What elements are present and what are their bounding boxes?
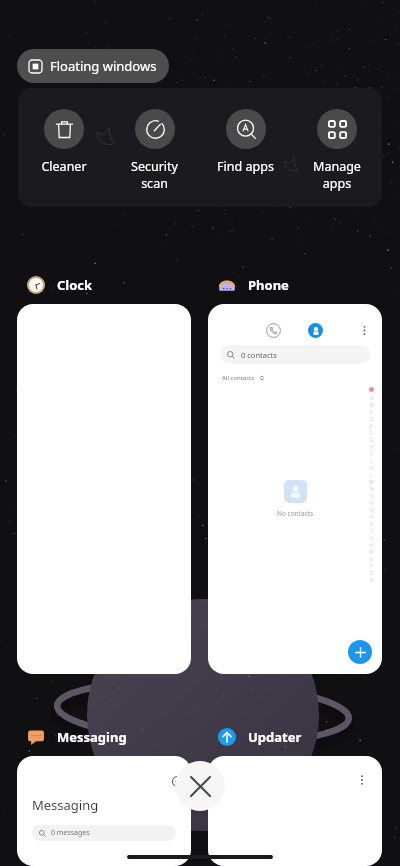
button[interactable]: Manage apps (291, 88, 382, 207)
staticText: N (370, 486, 374, 493)
staticText: X (370, 556, 373, 563)
staticText: Updater (248, 728, 302, 746)
staticText: No contacts (277, 509, 314, 518)
staticText: M (369, 479, 374, 486)
other: More options (358, 324, 371, 337)
button[interactable]: Updater (218, 728, 302, 746)
button[interactable]: Search (17, 756, 191, 866)
staticText: 0 messages (51, 828, 90, 838)
staticText: U (370, 535, 374, 542)
staticText: Y (370, 563, 373, 570)
staticText: R (370, 514, 373, 521)
button[interactable]: Phone (218, 276, 289, 294)
button[interactable]: Find apps (200, 88, 291, 207)
button[interactable]: Dialer (208, 304, 382, 674)
other: Search (172, 776, 183, 787)
other: Security scan (146, 120, 165, 139)
staticText: Floating windows (50, 57, 157, 75)
staticText: Clock (57, 276, 93, 294)
staticText: J (371, 458, 373, 465)
staticText: C (370, 409, 374, 416)
staticText: O (370, 493, 374, 500)
button[interactable] (17, 304, 191, 674)
button[interactable]: Close all (175, 761, 225, 811)
staticText: B (370, 402, 374, 409)
staticText: Messaging (57, 728, 127, 746)
staticText: Security scan (131, 158, 178, 191)
staticText: Z (370, 570, 373, 577)
button[interactable]: Add contact (348, 640, 372, 664)
staticText: Q (370, 507, 374, 514)
button[interactable]: Contacts (308, 323, 323, 338)
button[interactable]: Floating windows (17, 49, 169, 83)
staticText: K (370, 465, 373, 472)
staticText: E (370, 423, 373, 430)
button[interactable]: 0 messages (32, 825, 176, 841)
other: Find apps (237, 120, 256, 139)
staticText: W (369, 549, 374, 556)
staticText: 0 contacts (241, 350, 277, 360)
staticText: Messaging (32, 796, 99, 814)
other: Dialer (266, 323, 281, 338)
staticText: A (370, 395, 374, 402)
other: Cleaner (55, 120, 74, 139)
other: Manage apps (328, 120, 347, 139)
staticText: Phone (248, 276, 289, 294)
staticText: D (370, 416, 374, 423)
button[interactable]: Security scan (109, 88, 200, 207)
staticText: All contacts (222, 374, 255, 382)
button[interactable]: Clock (27, 276, 93, 294)
staticText: T (370, 528, 373, 535)
staticText: S (370, 521, 373, 528)
staticText: Find apps (217, 158, 274, 175)
staticText: I (371, 451, 373, 458)
staticText: H (370, 444, 374, 451)
staticText: # (370, 577, 374, 584)
staticText: P (370, 500, 373, 507)
staticText: Cleaner (41, 158, 87, 175)
button[interactable]: Messaging (27, 728, 127, 746)
staticText: F (370, 430, 373, 437)
button[interactable]: More options (208, 756, 382, 866)
button[interactable]: 0 contacts (220, 345, 370, 364)
staticText: L (370, 472, 373, 479)
other: More options (356, 774, 368, 786)
staticText: Manage apps (313, 158, 361, 191)
staticText: G (370, 437, 374, 444)
button[interactable]: Cleaner (18, 88, 109, 207)
staticText: V (370, 542, 373, 549)
